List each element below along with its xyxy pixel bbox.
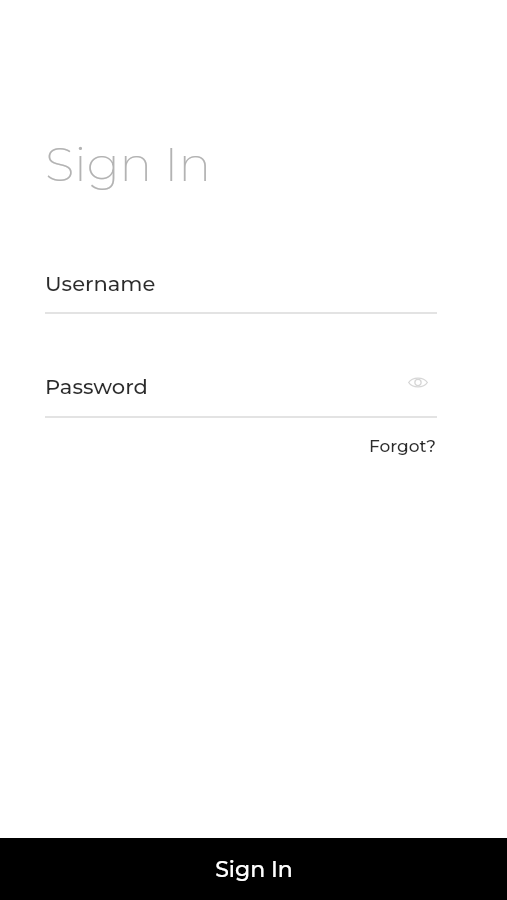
button[interactable]: Forgot?	[369, 436, 437, 457]
staticText: Sign In	[45, 134, 211, 193]
button[interactable]: Password	[45, 374, 148, 400]
staticText: Sign In	[215, 856, 293, 883]
staticText: Forgot?	[369, 436, 437, 457]
staticText: Username	[45, 271, 156, 297]
staticText: Password	[45, 374, 148, 400]
button[interactable]: Sign In	[0, 838, 507, 900]
button[interactable]: Username	[45, 271, 437, 297]
button[interactable]: Show password	[399, 369, 437, 395]
